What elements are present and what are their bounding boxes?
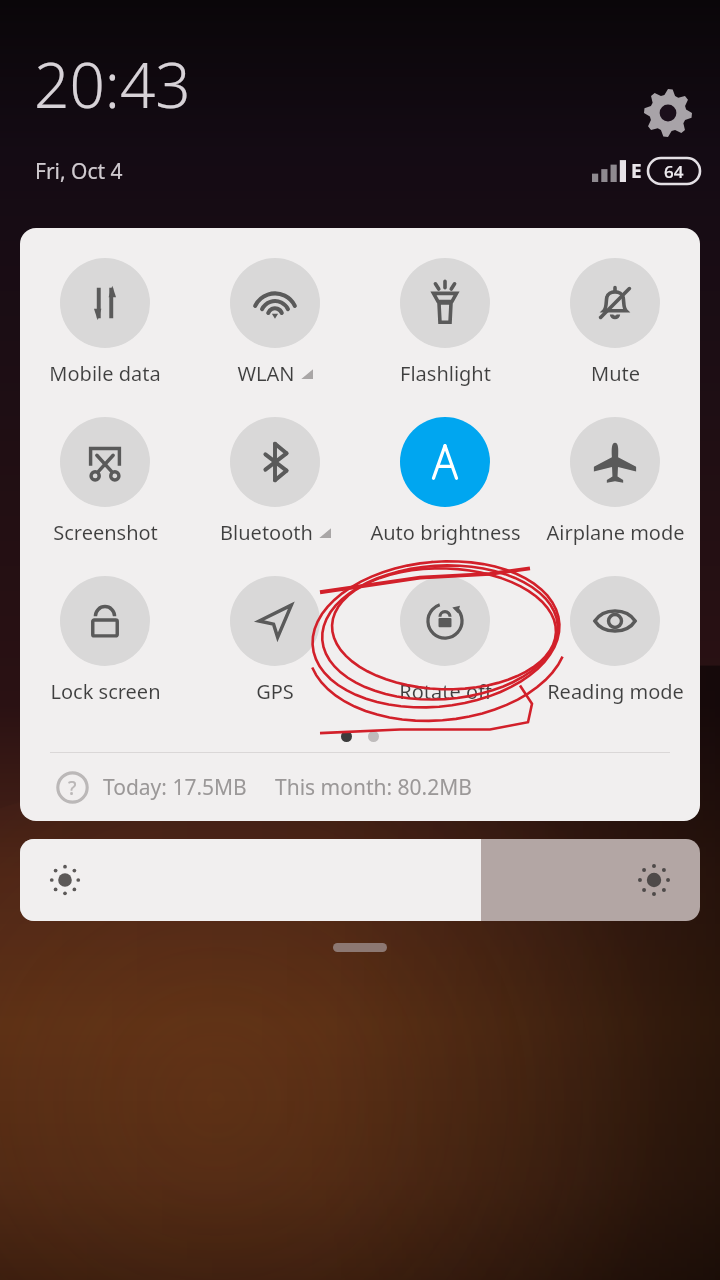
button[interactable]: Reading mode (530, 574, 700, 707)
staticText: Auto brightness (370, 519, 521, 546)
button[interactable]: Screenshot (20, 415, 190, 548)
staticText: Fri, Oct 4 (35, 157, 123, 186)
staticText: Rotate off (399, 678, 492, 705)
staticText: Mute (591, 360, 640, 387)
staticText: Airplane mode (546, 519, 685, 546)
button[interactable]: Settings (638, 83, 698, 143)
button[interactable]: ? (20, 753, 700, 821)
staticText: GPS (256, 678, 294, 705)
button[interactable]: Flashlight (360, 256, 530, 389)
staticText: WLAN (237, 360, 295, 387)
button[interactable]: Lock screen (20, 574, 190, 707)
staticText: Mobile data (49, 360, 161, 387)
button[interactable]: Auto brightness (360, 415, 530, 548)
button[interactable]: Rotate off (360, 574, 530, 707)
staticText: 64 (664, 160, 684, 183)
staticText: Screenshot (53, 519, 158, 546)
staticText: ? (68, 775, 77, 801)
staticText: This month: 80.2MB (275, 773, 472, 802)
button[interactable]: WLAN (190, 256, 360, 389)
button[interactable]: Mobile data (20, 256, 190, 389)
staticText: Bluetooth (220, 519, 313, 546)
button[interactable]: Brightness (20, 839, 700, 921)
staticText: 20:43 (34, 42, 191, 126)
staticText: E (631, 158, 642, 184)
button[interactable]: GPS (190, 574, 360, 707)
button[interactable]: Bluetooth (190, 415, 360, 548)
staticText: Lock screen (50, 678, 161, 705)
staticText: Flashlight (400, 360, 491, 387)
button[interactable]: Mute (530, 256, 700, 389)
staticText: Today: 17.5MB (103, 773, 247, 802)
staticText: Reading mode (547, 678, 684, 705)
button[interactable]: Airplane mode (530, 415, 700, 548)
